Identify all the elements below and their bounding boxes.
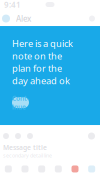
staticText: Continue — [12, 94, 29, 111]
button[interactable]: Continue — [12, 97, 29, 108]
button[interactable]: App one — [0, 165, 17, 172]
button[interactable]: Camera — [3, 133, 9, 139]
button[interactable]: App six — [83, 165, 100, 172]
button[interactable]: Music — [67, 165, 83, 172]
staticText: secondary detail line — [3, 152, 52, 159]
button[interactable]: Photos — [15, 133, 21, 139]
button[interactable]: Details — [89, 15, 100, 21]
staticText: Alex — [16, 13, 31, 24]
button[interactable]: Apps — [27, 133, 33, 139]
button[interactable]: App two — [17, 165, 33, 172]
staticText: Here is a quick note on the plan for the… — [12, 37, 73, 87]
staticText: Message title — [3, 143, 47, 152]
staticText: 9:41 — [4, 0, 21, 10]
button[interactable]: Send — [88, 132, 100, 139]
button[interactable]: App three — [33, 165, 50, 172]
button[interactable]: Alex — [0, 13, 31, 24]
button[interactable]: App four — [50, 165, 67, 172]
